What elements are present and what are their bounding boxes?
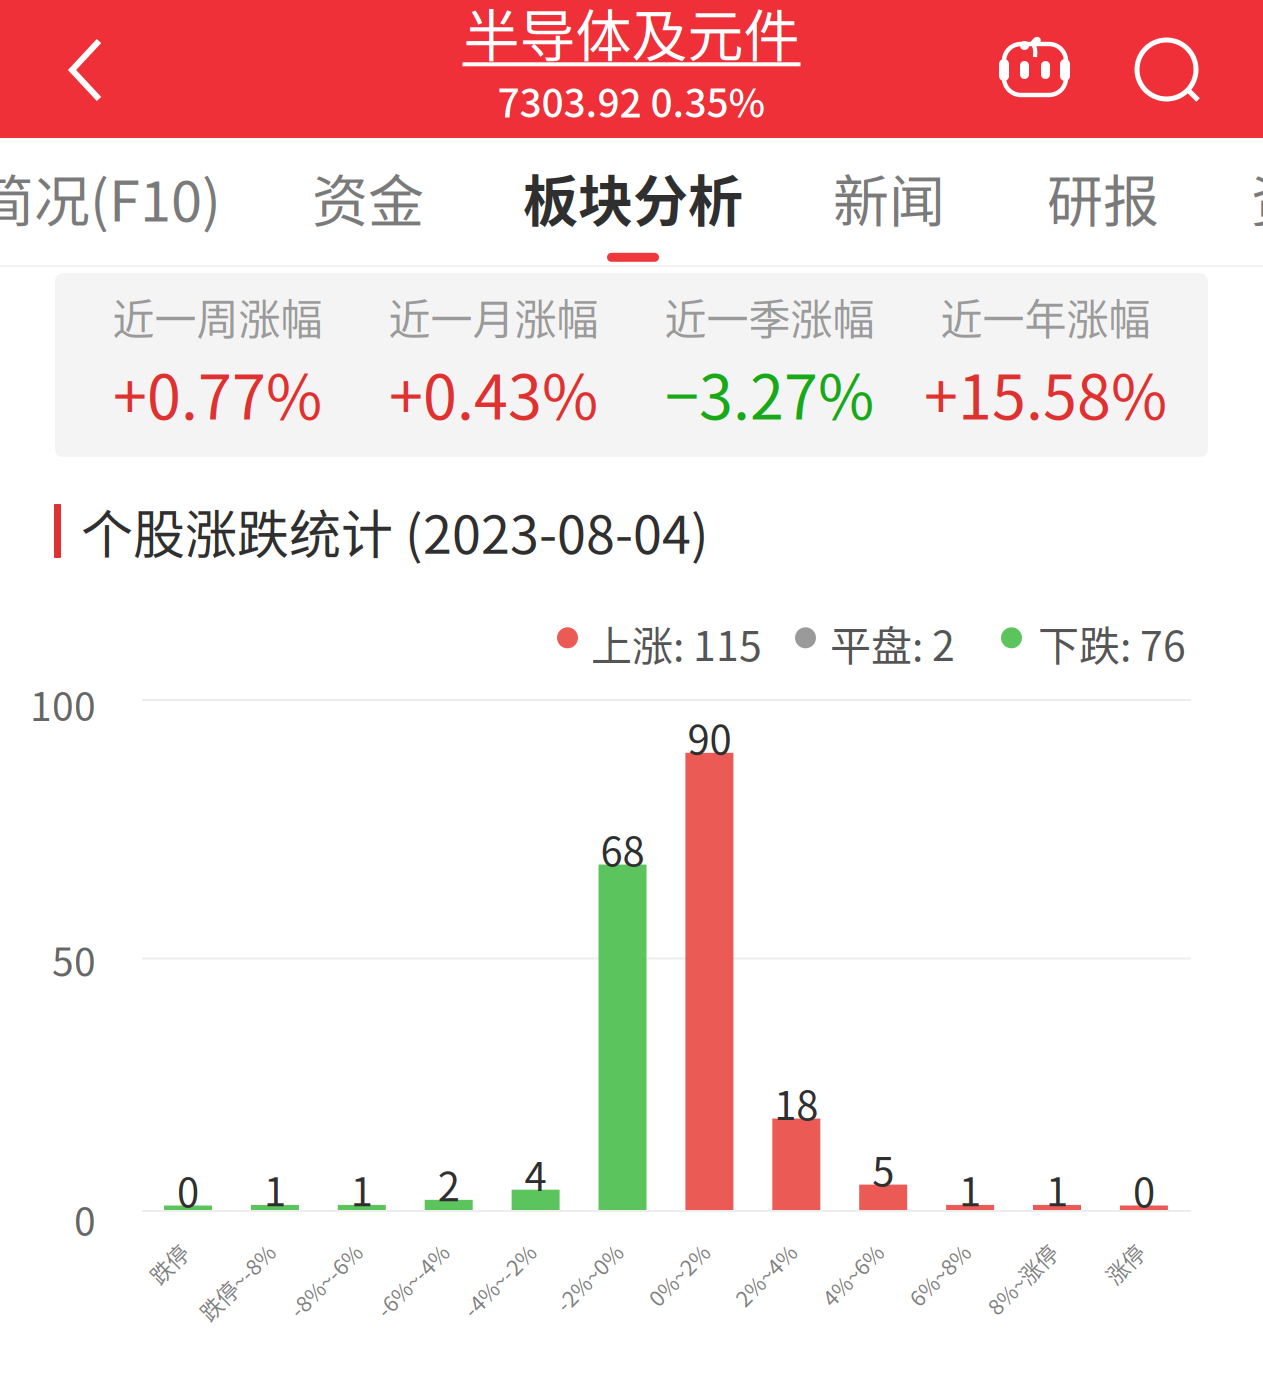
button[interactable]: 资金 <box>1251 138 1263 265</box>
staticText: 近一周涨幅 <box>112 286 322 347</box>
staticText: 板块分析 <box>523 157 743 237</box>
staticText: 跌停~-8% <box>189 1266 285 1298</box>
staticText: 简况(F10) <box>0 156 221 238</box>
staticText: 50 <box>52 931 96 988</box>
staticText: -6%~-4% <box>366 1264 458 1296</box>
staticText: 5 <box>872 1140 894 1197</box>
button[interactable]: AI assistant <box>980 0 1090 138</box>
staticText: 2%~4% <box>727 1259 803 1291</box>
staticText: 近一季涨幅 <box>664 286 874 347</box>
staticText: 4%~6% <box>814 1259 890 1291</box>
staticText: 近一月涨幅 <box>388 286 598 347</box>
staticText: 90 <box>687 708 731 766</box>
staticText: -8%~-6% <box>279 1264 371 1296</box>
staticText: 0 <box>74 1191 96 1247</box>
staticText: 跌停 <box>146 1248 190 1279</box>
staticText: 2 <box>438 1155 460 1213</box>
staticText: 平盘: 2 <box>830 613 955 673</box>
button[interactable]: 板块分析 <box>523 138 743 265</box>
staticText: 1 <box>351 1160 373 1218</box>
staticText: 研报 <box>1047 156 1159 238</box>
staticText: +0.77% <box>113 349 322 437</box>
button[interactable]: 新闻 <box>833 138 945 265</box>
button[interactable]: 研报 <box>1047 138 1159 265</box>
staticText: 18 <box>774 1074 818 1131</box>
staticText: 资金 <box>1251 156 1263 238</box>
staticText: 4 <box>525 1145 547 1203</box>
staticText: 近一年涨幅 <box>940 286 1150 347</box>
staticText: 涨停 <box>1102 1248 1146 1279</box>
staticText: 半导体及元件 <box>463 0 799 72</box>
button[interactable]: Back <box>0 0 170 138</box>
staticText: 新闻 <box>833 156 945 238</box>
button[interactable]: 资金 <box>312 138 424 265</box>
staticText: 下跌: 76 <box>1038 613 1186 673</box>
staticText: 上涨: 115 <box>591 613 762 673</box>
staticText: 8%~涨停 <box>978 1263 1066 1295</box>
staticText: 1 <box>1046 1160 1068 1218</box>
staticText: 100 <box>30 676 96 732</box>
staticText: 0 <box>177 1160 199 1218</box>
staticText: −3.27% <box>665 349 874 437</box>
staticText: +15.58% <box>924 349 1167 437</box>
staticText: 68 <box>600 820 644 877</box>
staticText: 0 <box>1133 1160 1155 1218</box>
staticText: 6%~8% <box>901 1259 977 1291</box>
button[interactable]: Search <box>1110 0 1220 138</box>
staticText: +0.43% <box>389 349 598 437</box>
staticText: 个股涨跌统计 (2023-08-04) <box>81 493 709 569</box>
staticText: 1 <box>264 1160 286 1218</box>
staticText: -2%~0% <box>547 1262 631 1294</box>
staticText: 7303.92 0.35% <box>497 72 765 129</box>
staticText: 0%~2% <box>640 1259 716 1291</box>
button[interactable]: 简况(F10) <box>0 138 221 265</box>
staticText: 资金 <box>312 156 424 238</box>
staticText: -4%~-2% <box>453 1264 545 1296</box>
staticText: 1 <box>959 1160 981 1218</box>
